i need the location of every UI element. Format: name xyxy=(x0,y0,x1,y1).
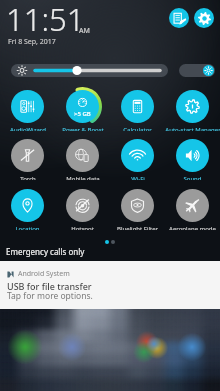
staticText: Torch xyxy=(20,175,36,180)
button[interactable]: AudioWizard xyxy=(0,87,55,131)
staticText: Tap for more options. xyxy=(7,290,93,302)
staticText: Location xyxy=(15,225,40,230)
button[interactable]: Auto-start Manager xyxy=(165,87,220,131)
button[interactable]: Settings xyxy=(194,8,214,28)
button[interactable]: Edit quick settings xyxy=(169,8,189,28)
staticText: Fri 8 Sep, 2017 xyxy=(8,37,56,47)
staticText: Emergency calls only xyxy=(6,246,85,257)
staticText: Sound xyxy=(183,175,202,180)
staticText: USB for file transfer xyxy=(7,280,92,292)
staticText: AM xyxy=(79,26,91,36)
button[interactable]: Aeroplane mode xyxy=(165,186,220,230)
staticText: Wi-Fi xyxy=(131,175,145,180)
staticText: Auto-start Manager xyxy=(165,126,220,131)
button[interactable]: Hotspot xyxy=(55,186,110,230)
staticText: 11:51 xyxy=(6,0,85,40)
staticText: Android System xyxy=(18,269,70,279)
staticText: Hotspot xyxy=(71,225,94,230)
button[interactable]: Auto brightness xyxy=(179,64,215,77)
button[interactable]: Sound xyxy=(165,136,220,180)
button[interactable]: Torch xyxy=(0,136,55,180)
button[interactable]: Calculator xyxy=(110,87,165,131)
staticText: >5 GB xyxy=(74,110,91,118)
staticText: Mobile data xyxy=(66,175,100,180)
button[interactable]: >5 GB xyxy=(55,87,110,131)
button[interactable]: Android System xyxy=(0,261,220,309)
button[interactable]: Brightness xyxy=(11,64,168,77)
staticText: Power & Boost xyxy=(62,126,104,131)
staticText: Bluelight Filter xyxy=(117,225,158,230)
button[interactable]: Bluelight Filter xyxy=(110,186,165,230)
staticText: Calculator xyxy=(123,126,152,131)
staticText: AudioWizard xyxy=(10,126,46,131)
button[interactable]: Mobile data xyxy=(55,136,110,180)
button[interactable]: Wi-Fi xyxy=(110,136,165,180)
staticText: Aeroplane mode xyxy=(169,225,216,230)
button[interactable]: Location xyxy=(0,186,55,230)
